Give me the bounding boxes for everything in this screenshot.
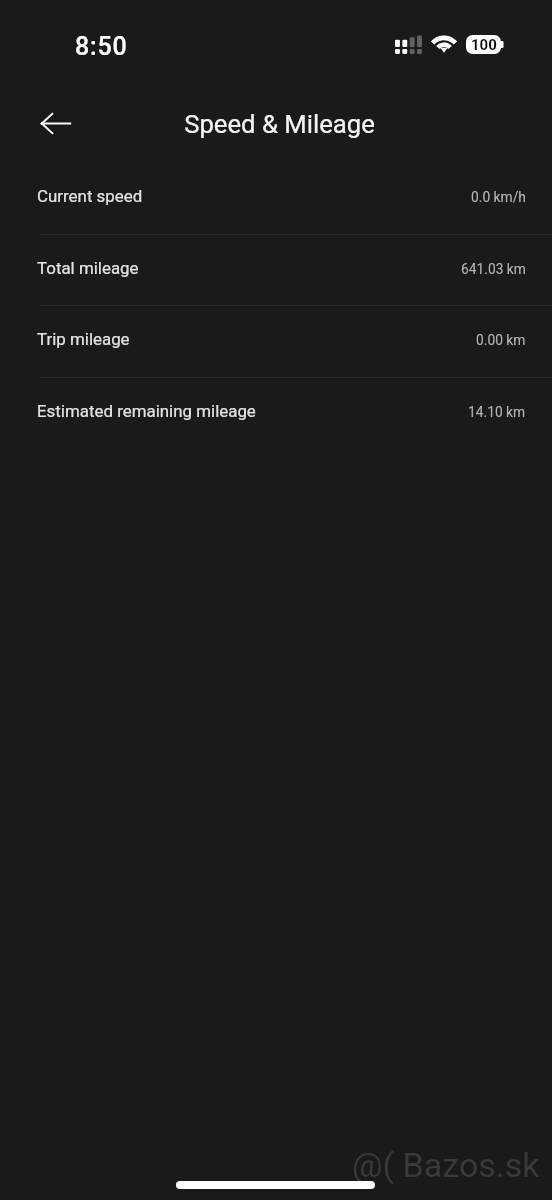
button[interactable]: Total mileage <box>0 234 552 305</box>
button[interactable]: Trip mileage <box>0 305 552 376</box>
button[interactable]: Current speed <box>0 162 552 233</box>
button[interactable]: Back <box>32 99 80 147</box>
staticText: 100 <box>471 36 497 54</box>
staticText: Current speed <box>37 186 143 206</box>
button[interactable]: Estimated remaining mileage <box>0 377 552 448</box>
staticText: Speed & Mileage <box>184 109 375 139</box>
staticText: Trip mileage <box>37 329 130 349</box>
staticText: Estimated remaining mileage <box>37 401 256 421</box>
staticText: 8:50 <box>75 32 128 61</box>
staticText: 641.03 km <box>461 261 526 277</box>
staticText: 14.10 km <box>468 404 526 420</box>
staticText: Total mileage <box>37 258 139 278</box>
staticText: 0.0 km/h <box>471 189 526 205</box>
staticText: 0.00 km <box>476 332 526 348</box>
staticText: @( Bazos.sk <box>352 1145 540 1185</box>
